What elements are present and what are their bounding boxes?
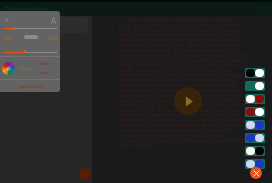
button[interactable]: Slider (12, 27, 15, 30)
staticText: Fast (49, 35, 58, 41)
button[interactable]: Invert (39, 69, 50, 75)
button[interactable]: Colour theme (245, 81, 265, 91)
staticText: A (5, 16, 9, 23)
staticText: Default (39, 61, 51, 66)
button[interactable]: Colour theme (245, 94, 265, 104)
button[interactable]: Record (79, 168, 91, 180)
button[interactable]: Close (250, 167, 262, 179)
staticText: Invert (40, 70, 50, 75)
button[interactable]: Colour theme (245, 68, 265, 78)
button[interactable]: Colour theme (245, 107, 265, 117)
button[interactable]: Colour theme (245, 120, 265, 130)
button[interactable]: Play (174, 87, 202, 115)
button[interactable]: Colour theme (245, 133, 265, 143)
button[interactable]: Default (39, 60, 51, 66)
staticText: Slow (3, 35, 13, 41)
button[interactable]: Slider (23, 50, 26, 53)
staticText: Colors (19, 65, 32, 71)
staticText: Other Settings (19, 84, 43, 89)
button[interactable]: Colour theme (245, 159, 265, 169)
button[interactable]: Speed (24, 35, 38, 39)
button[interactable]: Other Settings (18, 83, 43, 89)
staticText: tincidunt, euismod ex nec, interdum ex. … (119, 17, 247, 148)
staticText: A (51, 15, 57, 26)
button[interactable]: Colour theme (245, 146, 265, 156)
staticText: Teleprompter (5, 5, 48, 14)
